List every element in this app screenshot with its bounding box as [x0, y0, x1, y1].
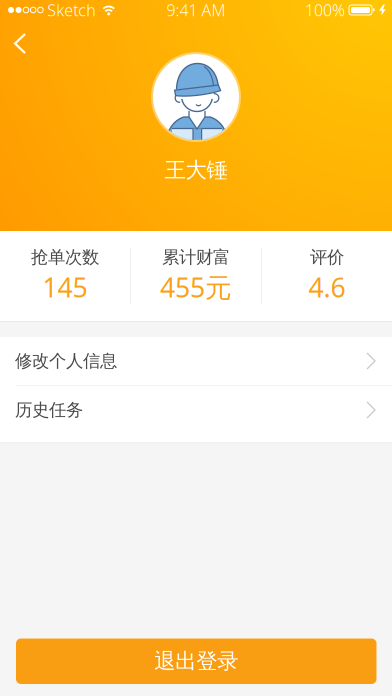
staticText: 100% — [305, 0, 345, 21]
staticText: 退出登录 — [154, 648, 238, 674]
staticText: 4.6 — [308, 269, 345, 305]
staticText: 9:41 AM — [166, 0, 225, 21]
staticText: 455元 — [160, 269, 232, 305]
staticText: 累计财富 — [162, 247, 230, 268]
staticText: 历史任务 — [15, 399, 83, 421]
staticText: 修改个人信息 — [15, 350, 117, 372]
staticText: 抢单次数 — [31, 247, 99, 268]
button[interactable]: 退出登录 — [16, 638, 376, 684]
staticText: Sketch — [47, 0, 96, 21]
button[interactable]: Back — [0, 18, 26, 54]
button[interactable]: 修改个人信息 — [0, 337, 392, 385]
staticText: 评价 — [310, 247, 344, 268]
button[interactable]: 历史任务 — [0, 386, 392, 434]
staticText: 王大锤 — [164, 157, 227, 183]
staticText: 145 — [42, 269, 87, 305]
